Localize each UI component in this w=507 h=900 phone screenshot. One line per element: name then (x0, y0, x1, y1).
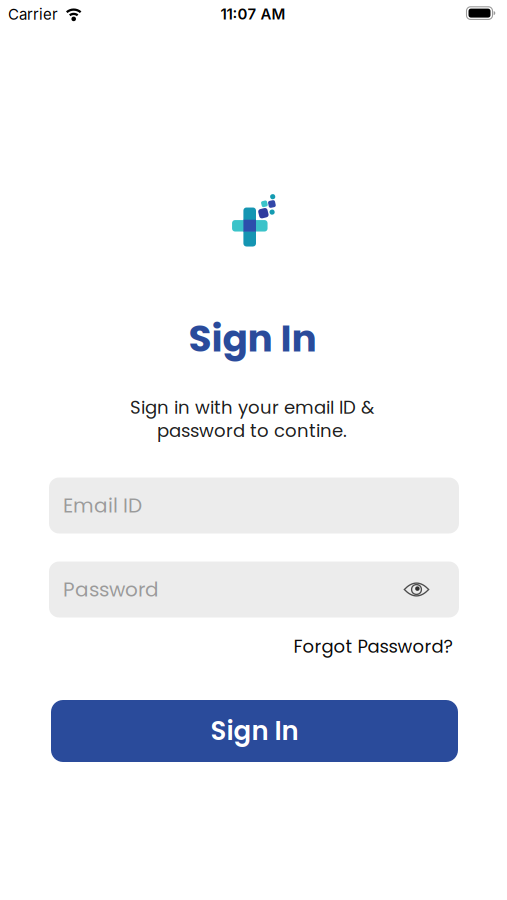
staticText: Email ID (63, 491, 142, 519)
staticText: Sign in with your email ID & (130, 395, 374, 420)
staticText: Sign In (188, 312, 316, 365)
staticText: 11:07 AM (220, 5, 285, 23)
staticText: password to contine. (157, 418, 347, 443)
button[interactable]: Forgot Password? (293, 634, 452, 659)
button[interactable]: Password (49, 561, 459, 617)
staticText: Carrier (8, 5, 58, 23)
staticText: Sign In (210, 713, 298, 749)
staticText: Password (63, 575, 159, 603)
button[interactable]: Email ID (49, 477, 459, 533)
button[interactable]: Sign In (51, 700, 458, 762)
staticText: Forgot Password? (293, 634, 452, 659)
